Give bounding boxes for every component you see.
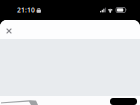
staticText: 21:10 <box>17 6 35 14</box>
button[interactable]: Close <box>0 20 17 39</box>
button[interactable]: Continue <box>110 98 137 105</box>
